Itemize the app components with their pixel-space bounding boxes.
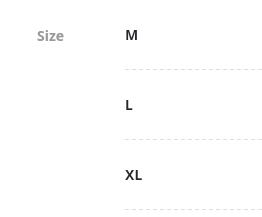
staticText: Size <box>37 26 65 45</box>
button[interactable]: L <box>125 70 262 140</box>
staticText: M <box>125 25 139 44</box>
button[interactable]: M <box>125 0 262 70</box>
staticText: L <box>125 95 133 114</box>
button[interactable]: XL <box>125 140 262 210</box>
staticText: XL <box>125 165 143 184</box>
